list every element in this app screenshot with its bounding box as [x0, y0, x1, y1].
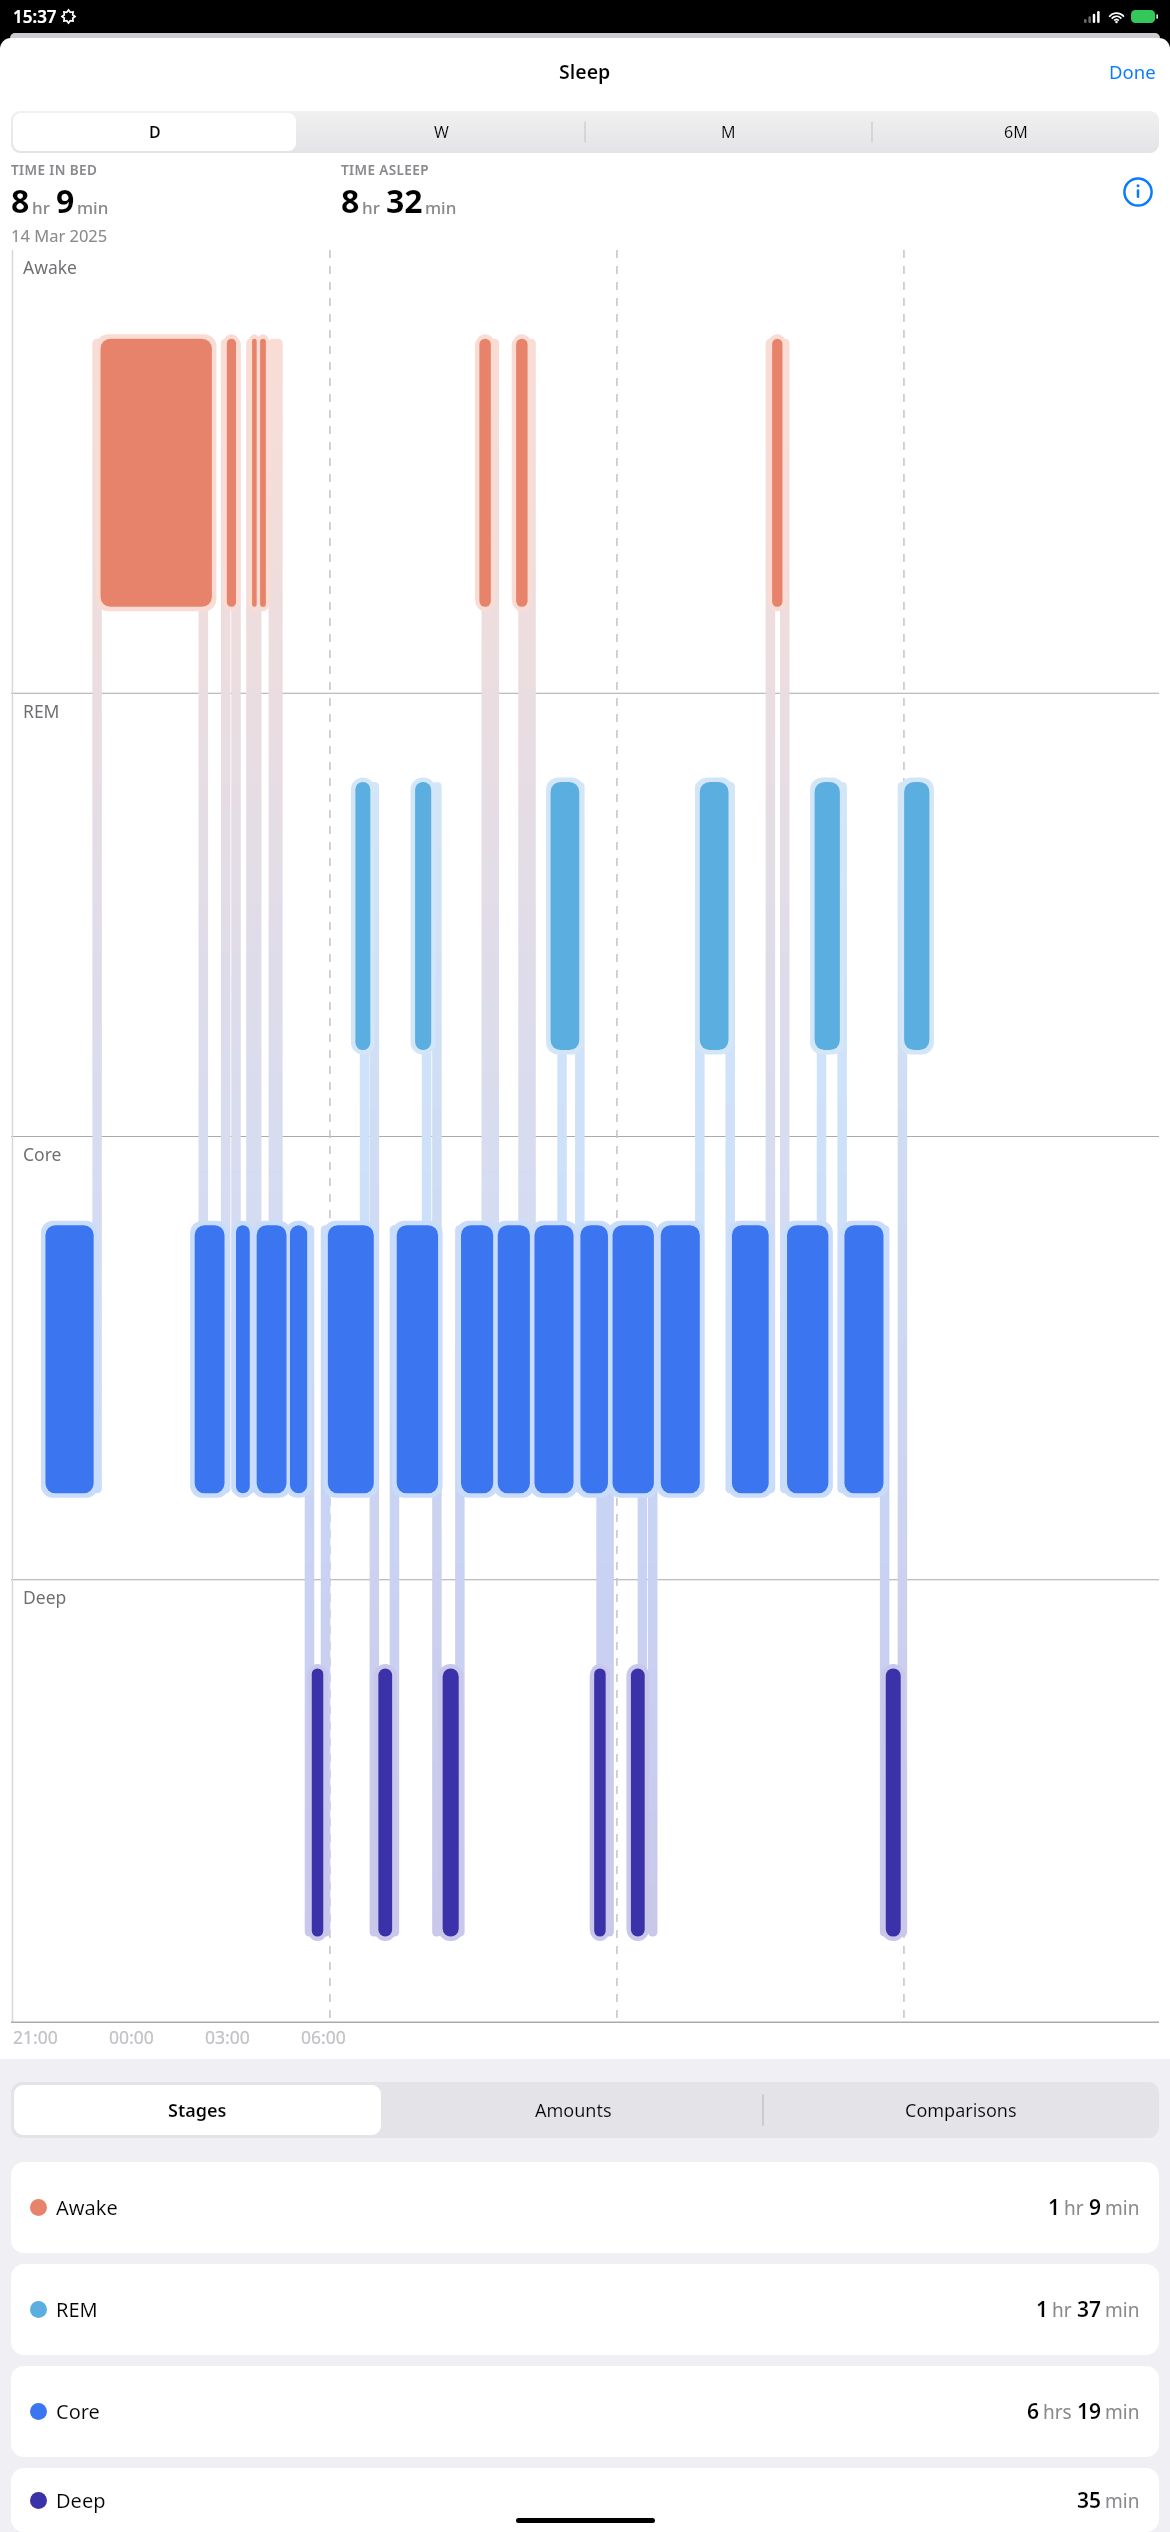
staticText: TIME ASLEEP: [341, 161, 429, 179]
staticText: 9: [56, 179, 75, 223]
staticText: 03:00: [205, 2025, 250, 2049]
staticText: min: [1105, 2399, 1140, 2425]
staticText: 6M: [1004, 121, 1028, 143]
staticText: hr: [32, 196, 50, 219]
staticText: min: [77, 196, 109, 219]
staticText: D: [149, 121, 161, 143]
staticText: 9: [1089, 2193, 1102, 2222]
button[interactable]: Amounts: [384, 2082, 763, 2138]
staticText: Deep: [23, 1585, 67, 1609]
staticText: Deep: [56, 2487, 106, 2514]
button[interactable]: M: [587, 113, 870, 151]
button[interactable]: 6M: [874, 113, 1157, 151]
staticText: hr: [1052, 2297, 1072, 2323]
staticText: 35: [1077, 2486, 1102, 2515]
staticText: min: [425, 196, 457, 219]
staticText: 00:00: [109, 2025, 154, 2049]
staticText: hr: [1064, 2195, 1084, 2221]
button[interactable]: W: [300, 113, 583, 151]
staticText: 19: [1077, 2397, 1102, 2426]
staticText: TIME IN BED: [11, 161, 98, 179]
staticText: W: [434, 121, 449, 143]
staticText: Done: [1109, 59, 1156, 84]
staticText: hrs: [1043, 2399, 1072, 2425]
staticText: 15:37: [13, 5, 57, 28]
staticText: 1: [1036, 2295, 1049, 2324]
staticText: REM: [23, 699, 60, 723]
staticText: min: [1105, 2195, 1140, 2221]
button[interactable]: Awake: [11, 2162, 1159, 2253]
staticText: Amounts: [535, 2098, 612, 2123]
staticText: 37: [1077, 2295, 1102, 2324]
staticText: 8: [341, 179, 360, 223]
button[interactable]: Done: [1106, 54, 1159, 89]
button[interactable]: D: [13, 113, 296, 151]
staticText: Awake: [23, 255, 77, 279]
staticText: Core: [23, 1142, 62, 1166]
staticText: min: [1105, 2297, 1140, 2323]
staticText: 8: [11, 179, 30, 223]
staticText: 32: [386, 179, 423, 223]
staticText: M: [721, 121, 736, 143]
button[interactable]: Stages: [14, 2085, 381, 2135]
button[interactable]: REM: [11, 2264, 1159, 2355]
staticText: 21:00: [13, 2025, 58, 2049]
staticText: 14 Mar 2025: [11, 224, 108, 246]
staticText: REM: [56, 2296, 98, 2323]
staticText: Core: [56, 2398, 100, 2425]
button[interactable]: Comparisons: [763, 2082, 1159, 2138]
button[interactable]: Core: [11, 2366, 1159, 2457]
staticText: Stages: [168, 2098, 227, 2123]
staticText: Sleep: [559, 58, 611, 85]
staticText: Comparisons: [905, 2098, 1017, 2123]
staticText: 1: [1048, 2193, 1061, 2222]
staticText: 6: [1027, 2397, 1040, 2426]
button[interactable]: Info: [1118, 172, 1158, 212]
staticText: Awake: [56, 2194, 118, 2221]
button[interactable]: Deep: [11, 2468, 1159, 2532]
staticText: min: [1105, 2488, 1140, 2514]
staticText: hr: [362, 196, 380, 219]
staticText: 06:00: [301, 2025, 346, 2049]
